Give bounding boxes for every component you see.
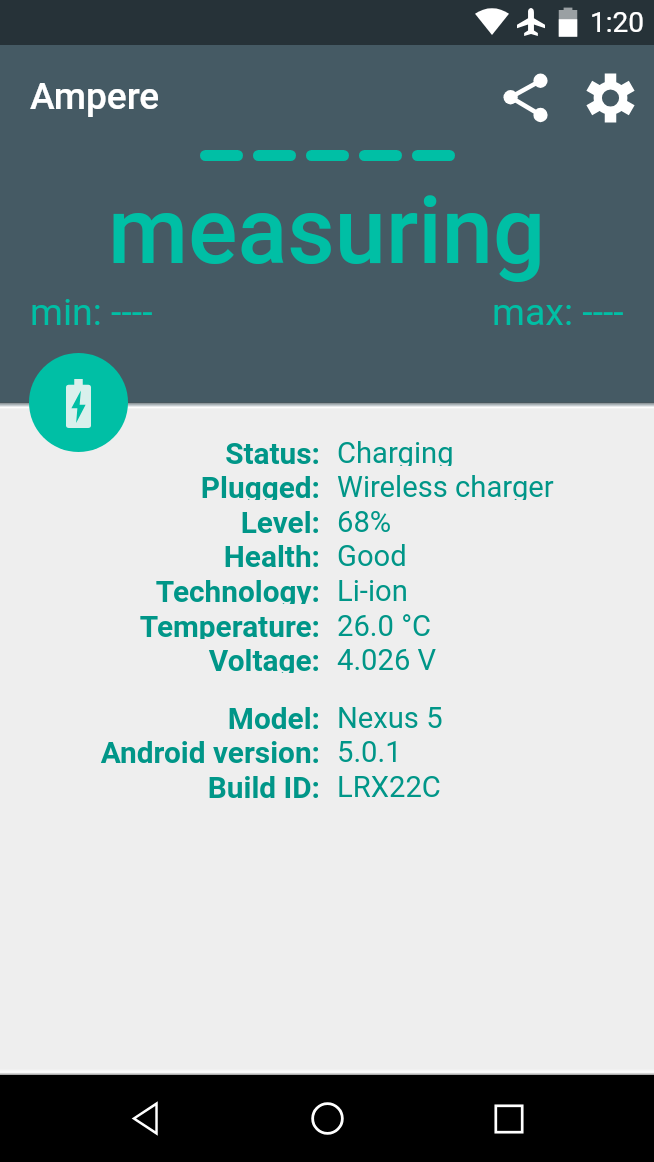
staticText: Nexus 5 [337,701,443,731]
button[interactable]: Measure battery [29,353,128,452]
staticText: 4.026 V [337,643,437,673]
staticText: LRX22C [337,770,441,800]
staticText: 1:20 [590,6,644,39]
staticText: Temperature: [139,609,320,639]
staticText: 68% [337,505,392,535]
button[interactable]: Settings [568,56,652,140]
staticText: Li-ion [337,574,408,604]
staticText: Plugged: [200,470,320,500]
staticText: Build ID: [207,770,320,800]
staticText: min: ---- [30,290,153,334]
staticText: Level: [240,505,320,535]
button[interactable]: Recents [463,1075,555,1162]
staticText: Health: [223,539,320,569]
staticText: 26.0 °C [337,609,432,639]
staticText: Technology: [155,574,320,604]
button[interactable]: Back [100,1075,191,1162]
staticText: Android version: [100,735,320,765]
staticText: Good [337,539,407,569]
staticText: Status: [225,436,320,466]
staticText: Model: [227,701,320,731]
button[interactable]: Share [484,56,568,140]
staticText: Ampere [30,75,160,118]
staticText: max: ---- [492,290,624,334]
staticText: measuring [108,178,546,286]
staticText: 5.0.1 [337,735,402,765]
staticText: Voltage: [208,643,320,673]
staticText: Charging [337,436,454,466]
button[interactable]: Home [281,1075,373,1162]
staticText: Wireless charger [337,470,554,500]
